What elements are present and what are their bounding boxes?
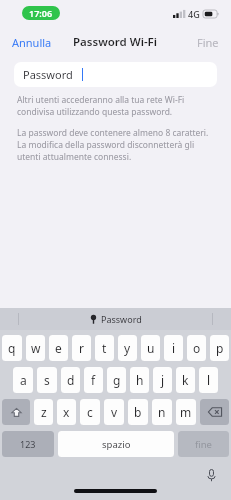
staticText: fine: [195, 438, 212, 451]
staticText: t: [102, 340, 107, 356]
staticText: v: [111, 404, 118, 420]
button[interactable]: i: [164, 335, 183, 361]
staticText: 123: [20, 438, 36, 450]
staticText: l: [207, 372, 211, 388]
staticText: k: [182, 372, 189, 388]
staticText: o: [193, 340, 201, 356]
button[interactable]: t: [95, 335, 114, 361]
button[interactable]: f: [84, 367, 103, 393]
button[interactable]: u: [141, 335, 160, 361]
staticText: Password: [101, 313, 142, 325]
staticText: z: [41, 404, 47, 420]
button[interactable]: g: [107, 367, 126, 393]
button[interactable]: p: [210, 335, 229, 361]
button[interactable]: d: [61, 367, 80, 393]
staticText: Annulla: [12, 35, 52, 50]
staticText: i: [172, 340, 176, 356]
staticText: u: [147, 340, 155, 356]
button[interactable]: s: [37, 367, 57, 393]
button[interactable]: r: [72, 335, 91, 361]
button[interactable]: v: [104, 399, 124, 425]
staticText: m: [180, 404, 192, 420]
staticText: q: [8, 340, 16, 356]
button[interactable]: b: [128, 399, 148, 425]
staticText: c: [87, 404, 93, 420]
button[interactable]: Dictation: [201, 465, 221, 485]
button[interactable]: y: [118, 335, 137, 361]
button[interactable]: Fine: [189, 31, 231, 54]
button[interactable]: Shift: [2, 399, 30, 425]
button[interactable]: n: [152, 399, 172, 425]
staticText: 4G: [188, 8, 200, 20]
button[interactable]: q: [2, 335, 22, 361]
button[interactable]: o: [187, 335, 206, 361]
button[interactable]: w: [26, 335, 45, 361]
button[interactable]: a: [13, 367, 33, 393]
staticText: b: [134, 404, 142, 420]
button[interactable]: m: [176, 399, 196, 425]
staticText: spazio: [102, 438, 131, 451]
button[interactable]: 123: [2, 431, 54, 457]
button[interactable]: l: [199, 367, 218, 393]
button[interactable]: k: [176, 367, 195, 393]
staticText: Password: [23, 67, 73, 82]
staticText: Password Wi-Fi: [73, 34, 158, 50]
staticText: h: [136, 372, 144, 388]
staticText: x: [63, 404, 70, 420]
button[interactable]: j: [153, 367, 172, 393]
staticText: La password deve contenere almeno 8 cara…: [17, 127, 214, 163]
staticText: n: [158, 404, 166, 420]
button[interactable]: Password: [14, 62, 217, 87]
button[interactable]: z: [34, 399, 53, 425]
button[interactable]: e: [49, 335, 68, 361]
staticText: p: [216, 340, 224, 356]
button[interactable]: Annulla: [0, 31, 60, 54]
staticText: r: [79, 340, 84, 356]
button[interactable]: c: [80, 399, 100, 425]
staticText: j: [161, 372, 165, 388]
button[interactable]: h: [130, 367, 149, 393]
staticText: g: [113, 372, 121, 388]
staticText: w: [31, 340, 41, 356]
button[interactable]: x: [57, 399, 76, 425]
staticText: e: [55, 340, 62, 356]
button[interactable]: spazio: [58, 431, 174, 457]
staticText: d: [67, 372, 75, 388]
staticText: a: [20, 372, 27, 388]
staticText: Altri utenti accederanno alla tua rete W…: [17, 94, 214, 118]
staticText: 17:06: [29, 7, 53, 19]
button[interactable]: fine: [178, 431, 229, 457]
button[interactable]: Password: [80, 310, 152, 328]
button[interactable]: Backspace: [200, 399, 229, 425]
staticText: y: [124, 340, 131, 356]
staticText: Fine: [197, 35, 219, 50]
staticText: f: [91, 372, 96, 388]
staticText: s: [44, 372, 50, 388]
